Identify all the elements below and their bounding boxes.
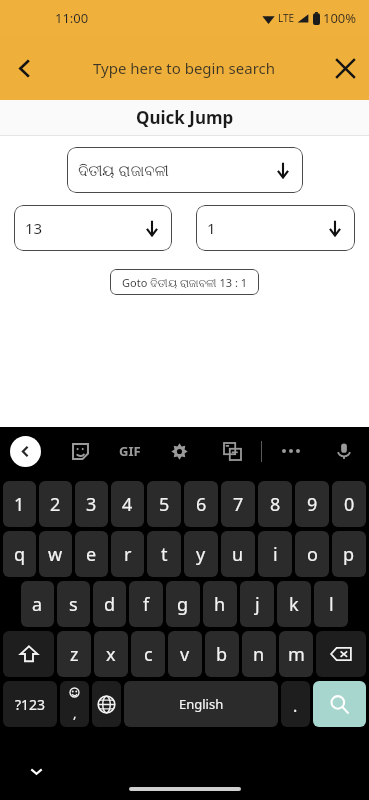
button[interactable]: j <box>240 581 274 627</box>
staticText: n <box>253 642 265 667</box>
staticText: ?123 <box>15 695 46 714</box>
button[interactable]: Collapse toolbar <box>10 436 41 467</box>
button[interactable]: m <box>279 631 313 677</box>
staticText: x <box>106 642 116 667</box>
button[interactable]: 13 <box>14 205 172 251</box>
staticText: d <box>104 592 116 617</box>
staticText: v <box>180 642 190 667</box>
button[interactable]: w <box>39 531 72 577</box>
button[interactable]: Translate <box>217 436 247 466</box>
button[interactable]: Backspace <box>316 631 366 677</box>
staticText: 0 <box>344 492 355 517</box>
button[interactable]: k <box>277 581 311 627</box>
staticText: , <box>73 704 77 722</box>
button[interactable]: 6 <box>184 481 218 527</box>
staticText: q <box>14 542 26 567</box>
button[interactable]: 4 <box>111 481 144 527</box>
staticText: 1 <box>14 492 25 517</box>
button[interactable]: u <box>221 531 255 577</box>
button[interactable]: Settings <box>164 436 194 466</box>
staticText: 6 <box>196 492 207 517</box>
staticText: z <box>70 642 79 667</box>
button[interactable]: . <box>281 681 310 727</box>
button[interactable]: h <box>203 581 237 627</box>
staticText: 9 <box>307 492 318 517</box>
staticText: 3 <box>86 492 97 517</box>
staticText: w <box>48 542 63 567</box>
button[interactable]: v <box>168 631 202 677</box>
button[interactable]: p <box>332 531 366 577</box>
staticText: Quick Jump <box>136 106 234 129</box>
button[interactable]: z <box>57 631 91 677</box>
staticText: ଦିତୀୟ ରାଜାବଳୀ <box>78 160 274 180</box>
button[interactable]: Hide keyboard <box>24 759 48 783</box>
staticText: 1 <box>207 218 326 238</box>
button[interactable]: y <box>184 531 218 577</box>
button[interactable]: Shift <box>3 631 54 677</box>
button[interactable]: Goto ଦିତୀୟ ରାଜାବଳୀ 13 : 1 <box>110 269 259 295</box>
button[interactable]: r <box>111 531 144 577</box>
staticText: o <box>307 542 318 567</box>
button[interactable]: f <box>129 581 163 627</box>
button[interactable]: s <box>57 581 90 627</box>
button[interactable]: Stickers <box>65 436 95 466</box>
staticText: English <box>179 695 224 713</box>
staticText: u <box>232 542 244 567</box>
button[interactable]: Search <box>313 681 366 727</box>
button[interactable]: More options <box>276 436 306 466</box>
button[interactable]: a <box>21 581 54 627</box>
button[interactable]: GIF <box>119 436 141 466</box>
staticText: p <box>343 542 355 567</box>
button[interactable]: Clear search <box>321 44 369 92</box>
button[interactable]: 2 <box>39 481 72 527</box>
button[interactable]: Emoji and comma <box>60 681 89 727</box>
button[interactable]: i <box>258 531 292 577</box>
button[interactable]: o <box>295 531 329 577</box>
button[interactable]: n <box>242 631 276 677</box>
staticText: a <box>32 592 43 617</box>
button[interactable]: 9 <box>295 481 329 527</box>
staticText: y <box>196 542 206 567</box>
button[interactable]: 3 <box>75 481 108 527</box>
button[interactable]: b <box>205 631 239 677</box>
button[interactable]: e <box>75 531 108 577</box>
staticText: 13 <box>25 218 143 238</box>
staticText: Goto ଦିତୀୟ ରାଜାବଳୀ 13 : 1 <box>122 275 247 290</box>
button[interactable]: x <box>94 631 128 677</box>
button[interactable]: l <box>314 581 348 627</box>
staticText: 5 <box>159 492 170 517</box>
staticText: r <box>124 542 132 567</box>
button[interactable]: Voice input <box>329 436 359 466</box>
staticText: j <box>255 592 260 617</box>
staticText: e <box>86 542 97 567</box>
button[interactable]: Back <box>0 44 48 92</box>
staticText: 2 <box>50 492 61 517</box>
button[interactable]: c <box>131 631 165 677</box>
staticText: 7 <box>233 492 244 517</box>
staticText: b <box>216 642 228 667</box>
button[interactable]: 8 <box>258 481 292 527</box>
button[interactable]: q <box>3 531 36 577</box>
staticText: k <box>289 592 299 617</box>
button[interactable]: 5 <box>147 481 181 527</box>
button[interactable]: ?123 <box>3 681 57 727</box>
button[interactable]: ଦିତୀୟ ରାଜାବଳୀ <box>67 147 303 193</box>
staticText: s <box>69 592 78 617</box>
button[interactable]: 7 <box>221 481 255 527</box>
staticText: h <box>214 592 226 617</box>
staticText: t <box>161 542 168 567</box>
button[interactable]: English <box>124 681 278 727</box>
button[interactable]: t <box>147 531 181 577</box>
staticText: GIF <box>119 442 141 460</box>
button[interactable]: 1 <box>196 205 355 251</box>
staticText: . <box>293 695 298 717</box>
button[interactable]: 0 <box>332 481 366 527</box>
button[interactable]: d <box>93 581 126 627</box>
staticText: i <box>273 542 278 567</box>
staticText: m <box>288 642 305 667</box>
button[interactable]: g <box>166 581 200 627</box>
staticText: 4 <box>122 492 133 517</box>
button[interactable]: 1 <box>3 481 36 527</box>
button[interactable]: Change language <box>92 681 121 727</box>
staticText: Type here to begin search <box>93 58 276 78</box>
